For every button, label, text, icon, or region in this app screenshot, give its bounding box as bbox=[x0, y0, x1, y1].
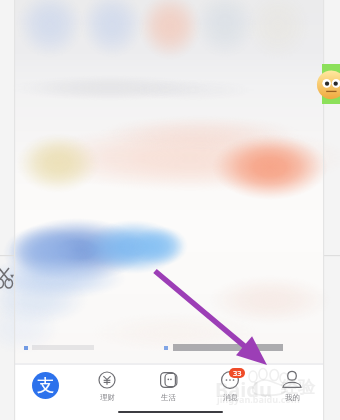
staticText: 生活 bbox=[161, 393, 176, 402]
staticText: jingyan.baidu.com bbox=[217, 393, 300, 405]
staticText: 33 bbox=[233, 368, 242, 378]
button[interactable]: 生活 bbox=[137, 365, 199, 420]
staticText: 支 bbox=[37, 375, 54, 396]
button[interactable]: 33 bbox=[199, 365, 261, 420]
staticText: 我的 bbox=[285, 393, 300, 402]
staticText: Baidu bbox=[215, 376, 272, 403]
staticText: 经验 bbox=[281, 377, 315, 398]
button[interactable]: Alipay home bbox=[15, 365, 76, 420]
staticText: 理财 bbox=[100, 393, 115, 402]
staticText: 消息 bbox=[223, 393, 238, 402]
button[interactable]: 我的 bbox=[261, 365, 323, 420]
button[interactable]: 理财 bbox=[76, 365, 137, 420]
